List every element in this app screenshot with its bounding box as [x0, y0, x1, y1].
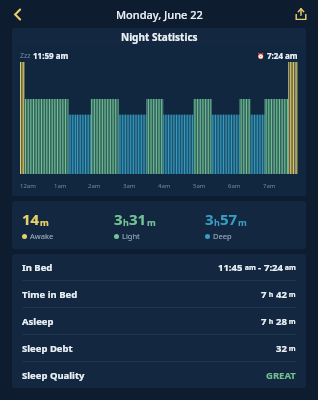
button[interactable]: Back [4, 1, 30, 27]
staticText: 3am [123, 182, 158, 190]
staticText: 7 [261, 315, 267, 328]
button[interactable]: Sleep Quality [12, 362, 306, 388]
button[interactable]: 14 [22, 209, 114, 241]
staticText: 14 [22, 209, 40, 229]
staticText: 7:24 [264, 261, 283, 274]
staticText: - [258, 261, 264, 274]
staticText: Night Statistics [121, 30, 198, 44]
staticText: Zzz [20, 51, 31, 61]
staticText: h [214, 216, 220, 228]
staticText: ⏰ [257, 52, 265, 59]
staticText: m [147, 216, 156, 228]
staticText: In Bed [22, 261, 218, 274]
staticText: am [243, 263, 258, 273]
staticText: m [287, 290, 296, 300]
staticText: 57 [220, 209, 238, 229]
staticText: 31 [129, 209, 147, 229]
staticText: 7 [261, 288, 267, 301]
staticText: 42 [276, 288, 287, 301]
staticText: 11:45 [218, 261, 243, 274]
staticText: 32 [276, 342, 287, 355]
staticText: Sleep Quality [22, 369, 266, 382]
staticText: 2am [88, 182, 123, 190]
staticText: Time in Bed [22, 288, 261, 301]
staticText: 1am [54, 182, 88, 190]
staticText: Light [122, 231, 140, 241]
staticText: m [287, 344, 296, 354]
staticText: am [283, 263, 296, 273]
button[interactable]: In Bed [12, 254, 306, 280]
button[interactable]: Asleep [12, 308, 306, 334]
staticText: 3 [114, 209, 123, 229]
staticText: h [123, 216, 129, 228]
staticText: Sleep Debt [22, 342, 276, 355]
staticText: Asleep [22, 315, 261, 328]
staticText: m [287, 317, 296, 327]
staticText: 11:59 am [33, 50, 69, 61]
staticText: h [267, 290, 276, 300]
button[interactable]: Time in Bed [12, 281, 306, 307]
staticText: 7am [263, 182, 298, 190]
button[interactable]: Share [288, 1, 314, 27]
staticText: 3 [205, 209, 214, 229]
button[interactable]: 3 [205, 209, 296, 241]
button[interactable]: 3 [114, 209, 205, 241]
staticText: m [238, 216, 247, 228]
staticText: 28 [276, 315, 287, 328]
staticText: Deep [213, 231, 232, 241]
button[interactable]: Sleep Debt [12, 335, 306, 361]
staticText: 5am [193, 182, 228, 190]
staticText: GREAT [266, 369, 296, 382]
staticText: h [267, 317, 276, 327]
staticText: 6am [228, 182, 263, 190]
staticText: m [40, 216, 49, 228]
staticText: 12am [20, 182, 54, 190]
staticText: Awake [30, 231, 54, 241]
staticText: 7:24 am [267, 50, 298, 61]
staticText: 4am [158, 182, 193, 190]
staticText: Monday, June 22 [116, 7, 203, 22]
